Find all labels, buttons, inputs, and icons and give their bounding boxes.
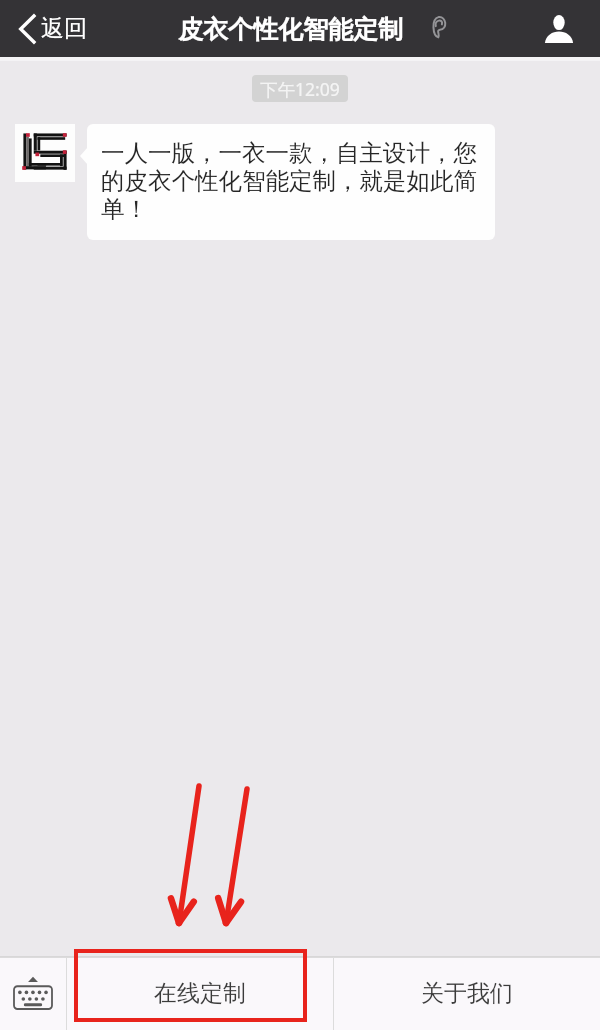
staticText: 下午12:09 — [260, 77, 340, 101]
button[interactable]: 关于我们 — [334, 957, 600, 1030]
button[interactable]: Profile — [524, 0, 600, 57]
button[interactable]: 返回 — [0, 0, 103, 57]
staticText: 返回 — [41, 14, 87, 43]
staticText: 一人一版，一衣一款，自主设计，您的皮衣个性化智能定制，就是如此简单！ — [101, 138, 485, 224]
staticText: 关于我们 — [421, 979, 513, 1008]
button[interactable]: Keyboard — [0, 957, 66, 1030]
button[interactable]: 在线定制 — [67, 957, 333, 1030]
staticText: 皮衣个性化智能定制 — [178, 14, 403, 45]
staticText: 在线定制 — [154, 979, 246, 1008]
